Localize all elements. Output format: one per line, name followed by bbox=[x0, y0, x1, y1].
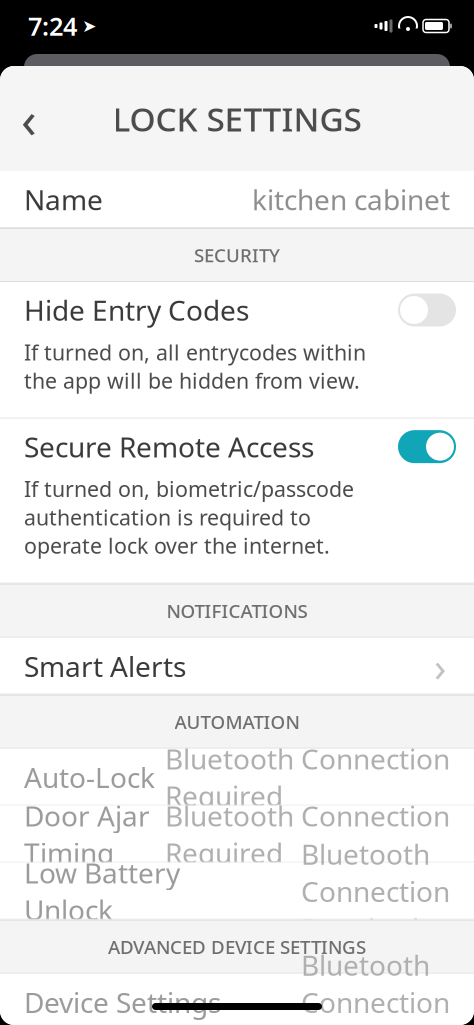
staticText: Bluetooth Connection Required bbox=[165, 740, 450, 814]
staticText: AUTOMATION bbox=[174, 709, 299, 734]
staticText: Name bbox=[24, 181, 103, 218]
button[interactable]: Back bbox=[0, 90, 50, 146]
staticText: Bluetooth Connection Required bbox=[165, 797, 450, 871]
staticText: Smart Alerts bbox=[24, 648, 186, 685]
button[interactable]: Device Settings bbox=[0, 974, 474, 1025]
staticText: LOCK SETTINGS bbox=[112, 96, 361, 141]
button[interactable]: Door Ajar Timing bbox=[0, 806, 474, 863]
staticText: Device Settings bbox=[24, 984, 221, 1021]
staticText: Auto-Lock bbox=[24, 759, 155, 796]
staticText: Bluetooth Connection Required bbox=[301, 946, 450, 1025]
staticText: ADVANCED DEVICE SETTINGS bbox=[108, 934, 366, 959]
staticText: Hide Entry Codes bbox=[24, 291, 249, 329]
staticText: ‹ bbox=[21, 85, 37, 152]
staticText: SECURITY bbox=[194, 243, 280, 267]
button[interactable]: Hide Entry Codes bbox=[0, 282, 474, 419]
staticText: NOTIFICATIONS bbox=[166, 598, 307, 623]
staticText: › bbox=[434, 640, 446, 693]
staticText: Bluetooth Connection Required bbox=[301, 835, 450, 947]
staticText: Door Ajar Timing bbox=[24, 797, 150, 871]
staticText: If turned on, biometric/passcode authent… bbox=[24, 475, 354, 560]
button[interactable]: Name bbox=[0, 171, 474, 228]
staticText: ➤ bbox=[82, 16, 97, 36]
staticText: 7:24 bbox=[28, 9, 77, 43]
button[interactable]: Secure Remote Access bbox=[0, 419, 474, 584]
button[interactable]: Low Battery Unlock bbox=[0, 863, 474, 920]
staticText: Secure Remote Access bbox=[24, 428, 314, 465]
button[interactable]: Auto-Lock bbox=[0, 749, 474, 806]
staticText: Low Battery Unlock bbox=[24, 854, 180, 928]
button[interactable]: Smart Alerts bbox=[0, 638, 474, 695]
staticText: kitchen cabinet bbox=[252, 181, 450, 218]
staticText: If turned on, all entrycodes within the … bbox=[24, 338, 366, 395]
